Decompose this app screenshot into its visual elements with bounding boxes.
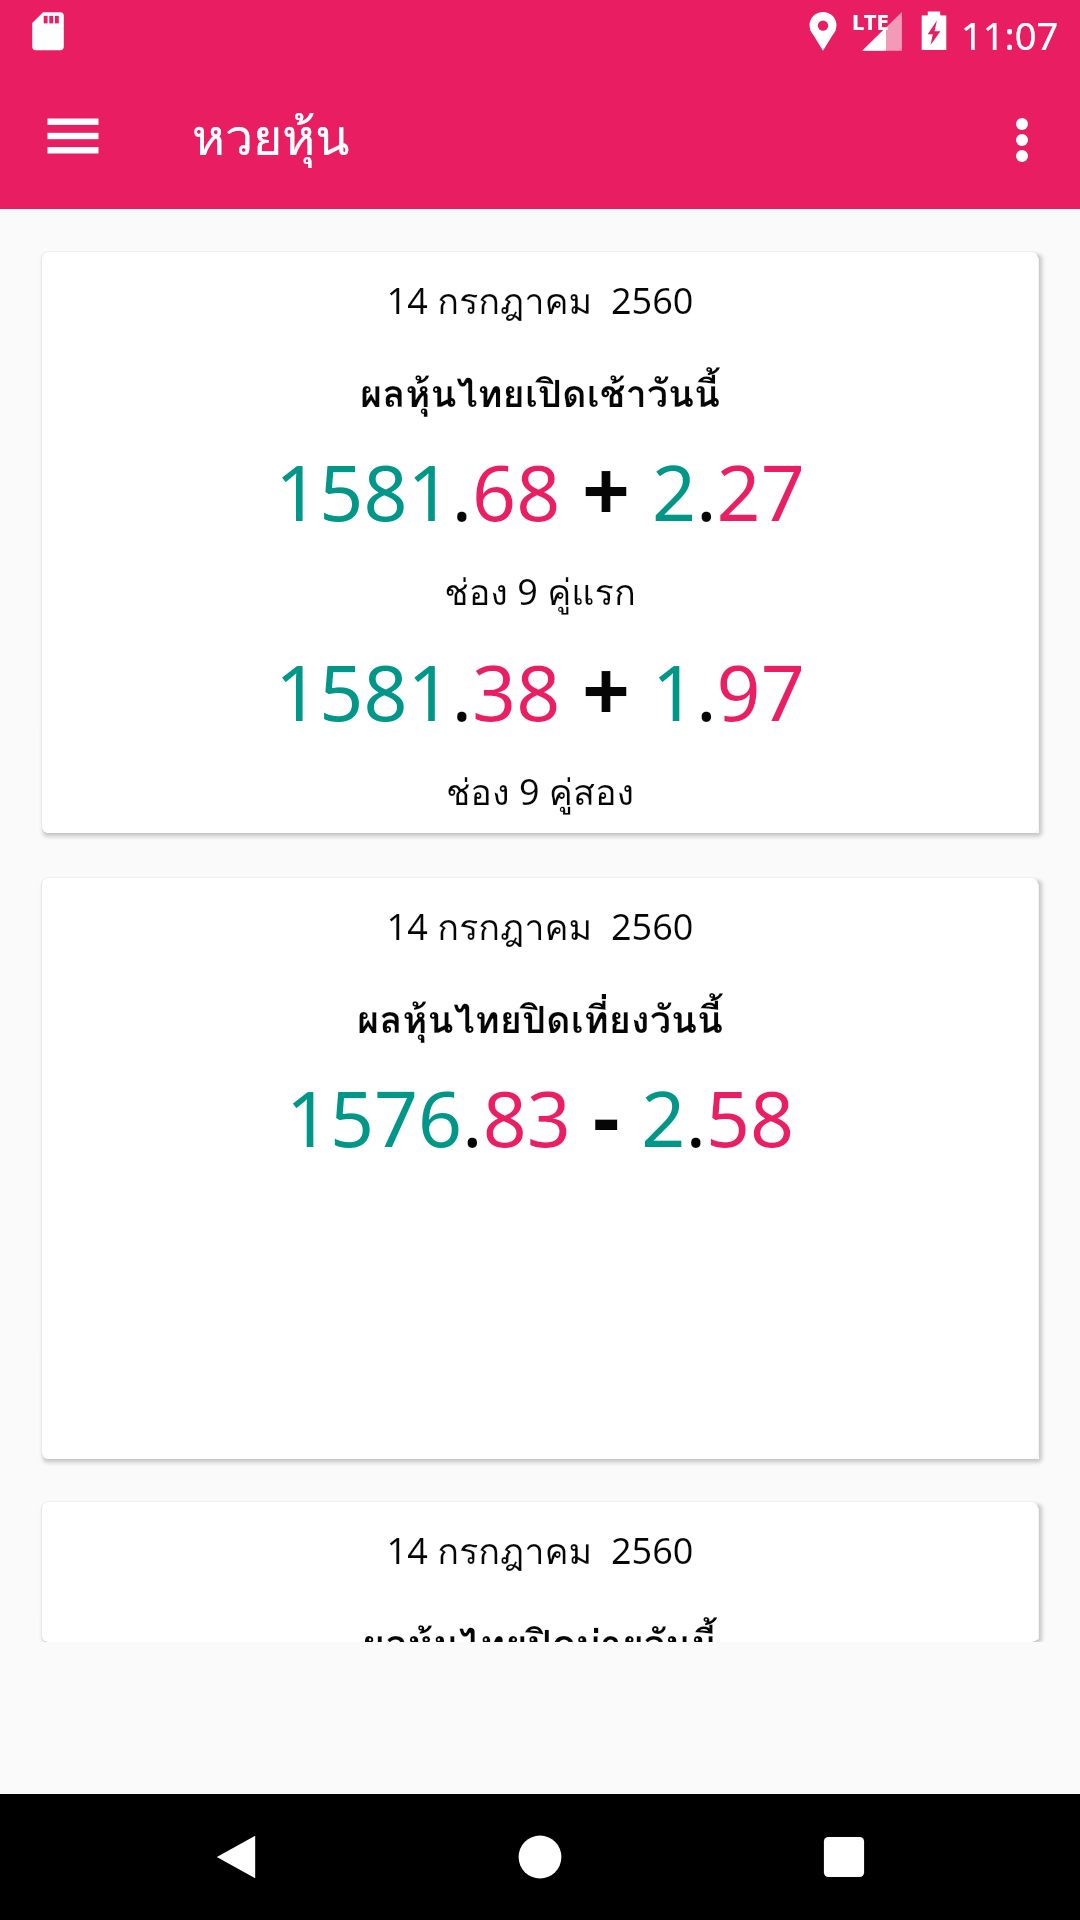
staticText: ช่อง 9 คู่แรก	[42, 564, 1038, 621]
button[interactable]: Home	[480, 1797, 600, 1917]
staticText: 1576.83 - 2.58	[42, 1057, 1038, 1171]
button[interactable]: 14 กรกฎาคม 2560	[42, 252, 1038, 833]
button[interactable]: Back	[176, 1797, 296, 1917]
staticText: ผลหุ้นไทยเปิดเช้าวันนี้	[42, 363, 1038, 423]
staticText: ช่อง 9 คู่สอง	[42, 764, 1038, 821]
staticText: LTE	[852, 6, 889, 36]
staticText: ผลหุ้นไทยปิดเที่ยงวันนี้	[42, 989, 1038, 1049]
button[interactable]: 14 กรกฎาคม 2560	[42, 878, 1038, 1459]
staticText: 11:07	[961, 9, 1059, 61]
staticText: ผลหุ้นไทยปิดบ่ายวันนี้	[42, 1613, 1038, 1642]
button[interactable]: More options	[972, 90, 1072, 190]
staticText: หวยหุ้น	[192, 98, 350, 177]
staticText: 14 กรกฎาคม 2560	[42, 273, 1038, 330]
staticText: 14 กรกฎาคม 2560	[42, 1523, 1038, 1580]
button[interactable]: Open navigation menu	[23, 90, 123, 190]
staticText: 14 กรกฎาคม 2560	[42, 899, 1038, 956]
staticText: 1581.68 + 2.27	[42, 431, 1038, 545]
button[interactable]: 14 กรกฎาคม 2560	[42, 1502, 1038, 1642]
staticText: 1581.38 + 1.97	[42, 631, 1038, 745]
button[interactable]: Recent apps	[784, 1797, 904, 1917]
